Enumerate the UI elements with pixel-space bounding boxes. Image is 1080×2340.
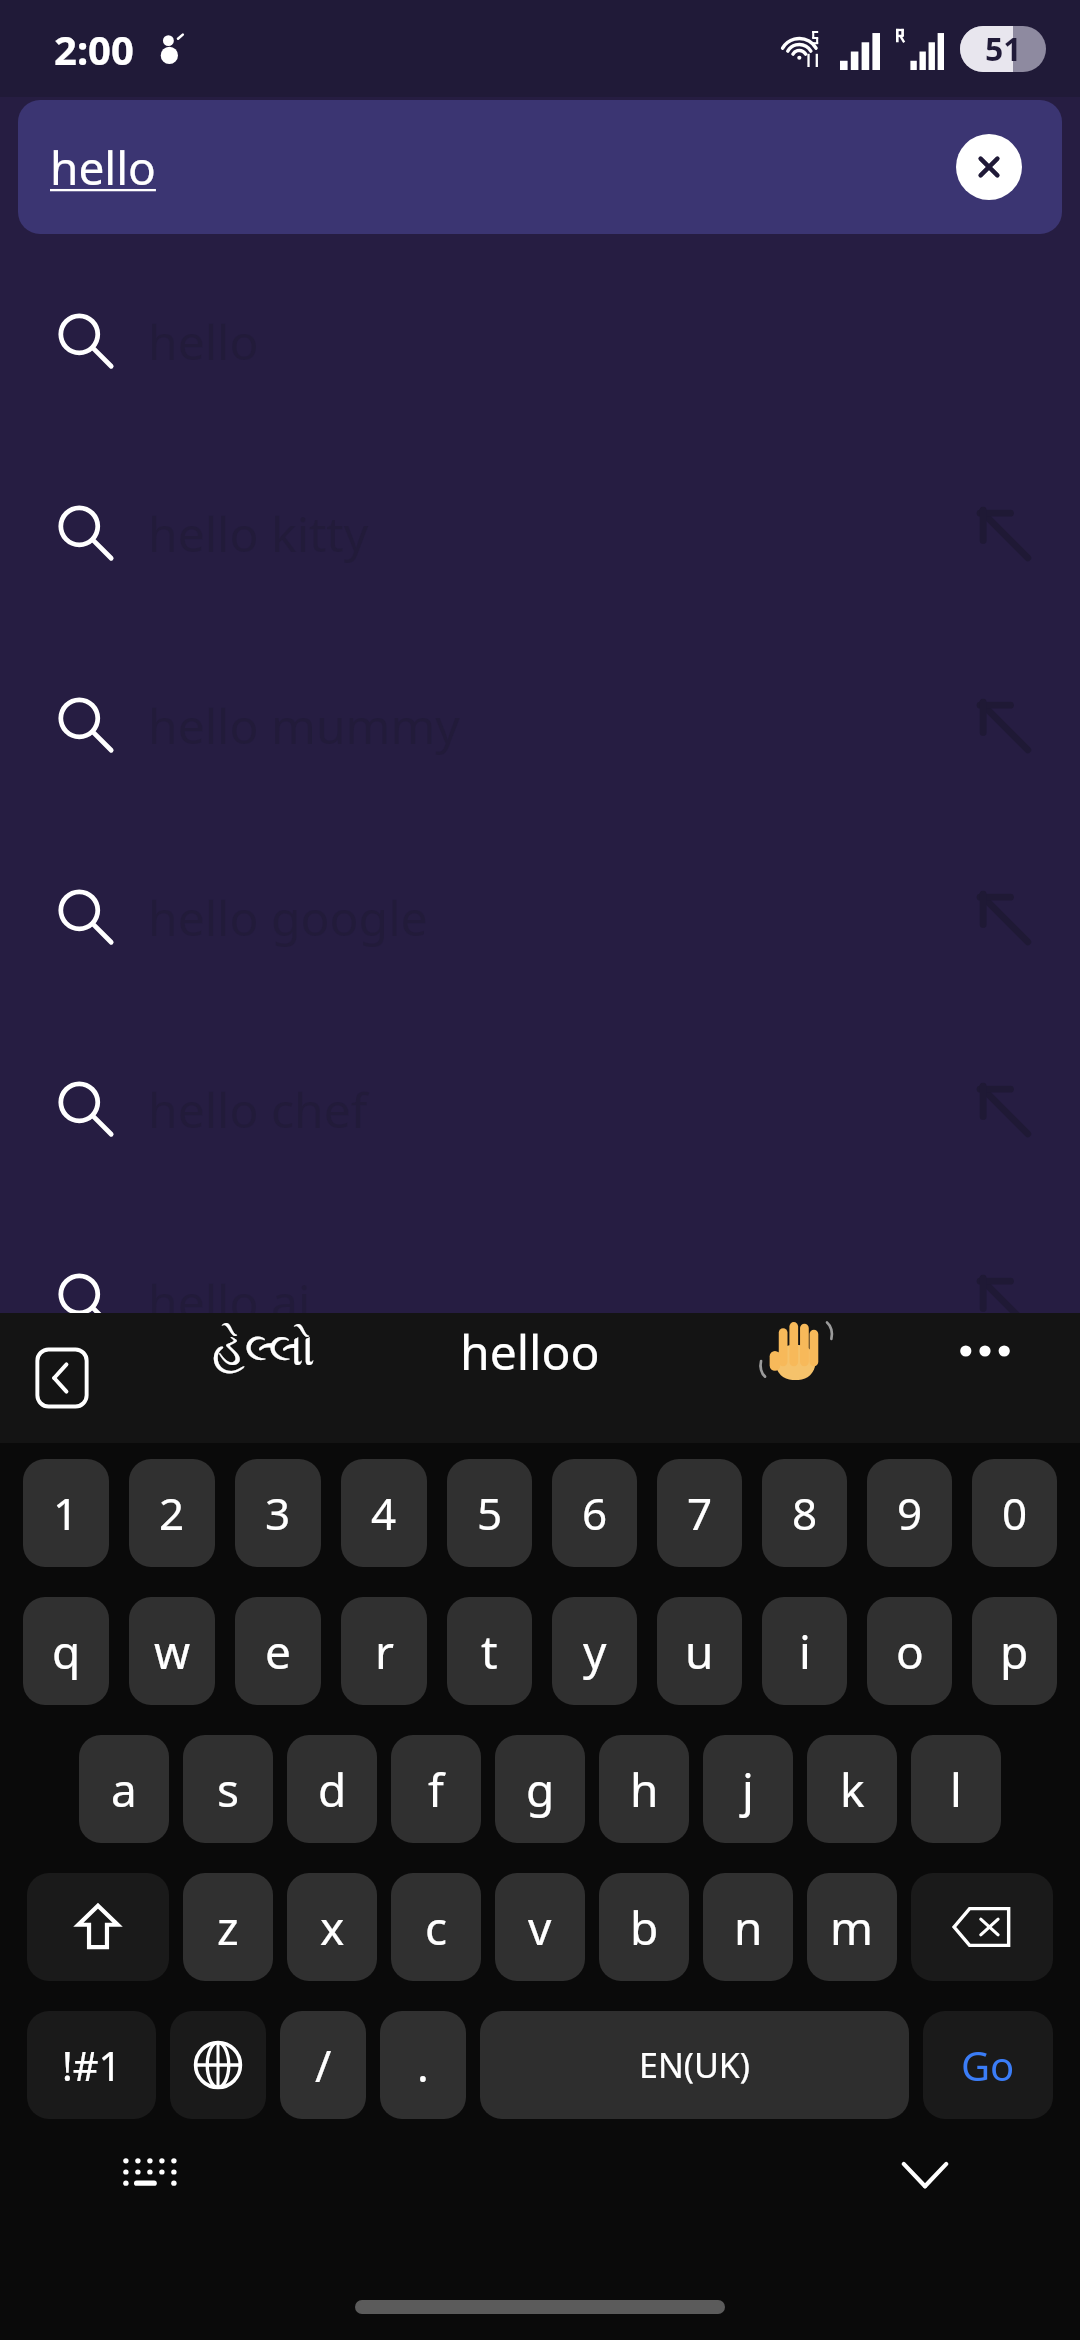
staticText: 8 — [792, 1483, 818, 1543]
button[interactable]: i — [762, 1597, 847, 1705]
button[interactable]: !#1 — [27, 2011, 156, 2119]
button[interactable]: Go — [923, 2011, 1053, 2119]
staticText: c — [425, 1896, 448, 1959]
staticText: n — [734, 1896, 763, 1959]
button[interactable]: y — [552, 1597, 637, 1705]
button[interactable]: q — [23, 1597, 109, 1705]
staticText: o — [896, 1620, 924, 1683]
button[interactable]: h — [599, 1735, 689, 1843]
button[interactable]: b — [599, 1873, 689, 1981]
staticText: a — [111, 1758, 137, 1821]
button[interactable]: 8 — [762, 1459, 847, 1567]
button[interactable]: j — [703, 1735, 793, 1843]
staticText: 4 — [371, 1483, 397, 1543]
button[interactable] — [663, 1313, 930, 1389]
staticText: g — [526, 1758, 555, 1821]
button[interactable]: c — [391, 1873, 481, 1981]
staticText: i — [799, 1620, 811, 1683]
staticText: r — [375, 1620, 394, 1683]
staticText: x — [320, 1896, 345, 1959]
button[interactable]: p — [972, 1597, 1057, 1705]
button[interactable]: u — [657, 1597, 742, 1705]
staticText: p — [1000, 1620, 1029, 1683]
button[interactable]: hello mummy — [0, 629, 1080, 821]
button[interactable]: 1 — [23, 1459, 109, 1567]
button[interactable]: w — [129, 1597, 215, 1705]
button[interactable]: e — [235, 1597, 321, 1705]
button[interactable]: 9 — [867, 1459, 952, 1567]
button[interactable]: / — [280, 2011, 366, 2119]
button[interactable]: x — [287, 1873, 377, 1981]
button[interactable]: 0 — [972, 1459, 1057, 1567]
staticText: k — [840, 1758, 865, 1821]
staticText: f — [428, 1758, 444, 1821]
button[interactable]: 2 — [129, 1459, 215, 1567]
staticText: z — [217, 1896, 239, 1959]
button[interactable]: r — [341, 1597, 427, 1705]
button[interactable]: EN(UK) — [480, 2011, 909, 2119]
button[interactable]: Switch keyboard — [120, 2143, 184, 2207]
button[interactable]: t — [447, 1597, 532, 1705]
staticText: d — [318, 1758, 347, 1821]
staticText: 2:00 — [54, 22, 134, 76]
staticText: j — [742, 1758, 754, 1821]
staticText: u — [685, 1620, 714, 1683]
button[interactable]: k — [807, 1735, 897, 1843]
button[interactable]: hello — [18, 100, 1062, 234]
staticText: b — [630, 1896, 659, 1959]
button[interactable]: z — [183, 1873, 273, 1981]
staticText: 2 — [159, 1483, 185, 1543]
button[interactable]: Clear search — [956, 134, 1022, 200]
button[interactable]: hello google — [0, 821, 1080, 1013]
button[interactable]: f — [391, 1735, 481, 1843]
button[interactable]: hello chef — [0, 1013, 1080, 1205]
staticText: EN(UK) — [639, 2042, 751, 2088]
staticText: s — [217, 1758, 240, 1821]
button[interactable]: l — [911, 1735, 1001, 1843]
staticText: m — [830, 1896, 874, 1959]
button[interactable]: v — [495, 1873, 585, 1981]
button[interactable]: More options — [930, 1341, 1040, 1361]
button[interactable]: g — [495, 1735, 585, 1843]
button[interactable]: m — [807, 1873, 897, 1981]
button[interactable]: helloo — [396, 1319, 663, 1384]
staticText: helloo — [460, 1319, 600, 1384]
button[interactable]: d — [287, 1735, 377, 1843]
button[interactable]: Previous suggestions — [34, 1347, 90, 1409]
button[interactable]: Change language — [170, 2011, 266, 2119]
button[interactable]: n — [703, 1873, 793, 1981]
button[interactable]: s — [183, 1735, 273, 1843]
button[interactable]: Backspace — [911, 1873, 1053, 1981]
button[interactable]: o — [867, 1597, 952, 1705]
button[interactable]: 5 — [447, 1459, 532, 1567]
staticText: 51 — [985, 27, 1022, 71]
staticText: . — [417, 2035, 429, 2095]
button[interactable]: a — [79, 1735, 169, 1843]
staticText: q — [52, 1620, 81, 1683]
staticText: h — [630, 1758, 659, 1821]
staticText: v — [528, 1896, 552, 1959]
button[interactable]: . — [380, 2011, 466, 2119]
button[interactable]: 4 — [341, 1459, 427, 1567]
button[interactable]: 3 — [235, 1459, 321, 1567]
staticText: w — [154, 1620, 191, 1683]
staticText: 9 — [897, 1483, 923, 1543]
staticText: 6 — [582, 1483, 608, 1543]
staticText: hello — [50, 136, 156, 199]
staticText: 0 — [1002, 1483, 1028, 1543]
staticText: y — [583, 1620, 607, 1683]
button[interactable]: Shift — [27, 1873, 169, 1981]
staticText: hello ai — [148, 1269, 311, 1334]
staticText: !#1 — [62, 2038, 122, 2092]
staticText: 1 — [53, 1483, 79, 1543]
staticText: હેલ્લો — [212, 1328, 315, 1374]
button[interactable]: 7 — [657, 1459, 742, 1567]
button[interactable]: hello ai — [0, 1205, 1080, 1397]
button[interactable]: hello kitty — [0, 437, 1080, 629]
button[interactable]: હેલ્લો — [130, 1328, 396, 1374]
button[interactable]: hello — [0, 245, 1080, 437]
button[interactable]: 6 — [552, 1459, 637, 1567]
button[interactable]: Hide keyboard — [890, 2139, 960, 2209]
